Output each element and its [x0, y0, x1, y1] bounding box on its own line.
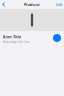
staticText: Secondary info line [3, 40, 30, 44]
staticText: Item Title [3, 34, 21, 39]
button[interactable]: Edit [54, 0, 64, 9]
staticText: Product [24, 2, 40, 7]
staticText: Edit [56, 2, 62, 7]
button[interactable]: Back [0, 0, 7, 9]
